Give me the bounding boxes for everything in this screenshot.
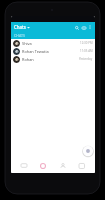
button[interactable]: Shiva bbox=[11, 39, 95, 47]
staticText: Yesterday bbox=[79, 57, 93, 61]
button[interactable]: New chat bbox=[82, 145, 94, 157]
button[interactable]: Rohan bbox=[11, 55, 95, 63]
button[interactable]: Search bbox=[73, 24, 80, 31]
staticText: 12:30 PM bbox=[80, 41, 93, 45]
button[interactable]: Rohan Tewatia bbox=[11, 47, 95, 55]
button[interactable]: Chats bbox=[17, 159, 31, 173]
staticText: 11:05 AM bbox=[80, 49, 93, 53]
button[interactable]: More bbox=[75, 159, 89, 173]
staticText: CHATS bbox=[14, 33, 26, 38]
button[interactable]: Favorites bbox=[36, 159, 50, 173]
button[interactable]: More options bbox=[87, 24, 93, 30]
button[interactable]: Account bbox=[56, 159, 70, 173]
button[interactable]: Camera bbox=[80, 24, 87, 31]
staticText: Rohan bbox=[22, 57, 34, 62]
staticText: Rohan Tewatia bbox=[22, 49, 49, 54]
staticText: Shiva bbox=[22, 41, 32, 46]
staticText: Chats bbox=[14, 24, 26, 30]
